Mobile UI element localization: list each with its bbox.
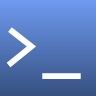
button[interactable]: Terminal — [0, 0, 96, 96]
